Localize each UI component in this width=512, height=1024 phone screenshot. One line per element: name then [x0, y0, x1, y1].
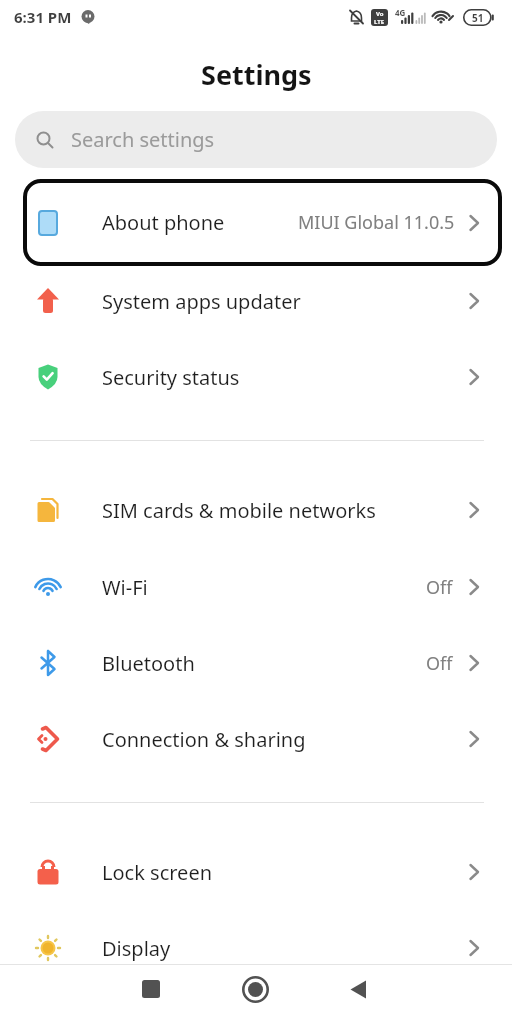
- button[interactable]: Display: [0, 910, 512, 986]
- button[interactable]: [342, 973, 374, 1005]
- staticText: Display: [102, 935, 171, 962]
- staticText: Wi-Fi: [102, 574, 148, 601]
- button[interactable]: SIM cards & mobile networks: [0, 472, 512, 548]
- staticText: About phone: [102, 209, 225, 236]
- staticText: Bluetooth: [102, 650, 195, 677]
- staticText: System apps updater: [102, 288, 301, 315]
- button[interactable]: Security status: [0, 339, 512, 415]
- staticText: 6:31 PM: [14, 7, 72, 27]
- staticText: 51: [472, 11, 484, 25]
- button[interactable]: Bluetooth: [0, 625, 512, 701]
- staticText: Connection & sharing: [102, 726, 306, 753]
- button[interactable]: Search settings: [15, 111, 497, 168]
- button[interactable]: About phone: [23, 179, 502, 266]
- button[interactable]: System apps updater: [0, 263, 512, 339]
- staticText: 4G: [395, 7, 406, 18]
- staticText: Search settings: [71, 126, 215, 153]
- staticText: LTE: [374, 18, 385, 26]
- button[interactable]: [239, 973, 271, 1005]
- button[interactable]: Lock screen: [0, 834, 512, 910]
- staticText: Settings: [201, 56, 312, 93]
- button[interactable]: Connection & sharing: [0, 701, 512, 777]
- button[interactable]: [135, 973, 167, 1005]
- staticText: MIUI Global 11.0.5: [298, 210, 455, 235]
- staticText: Lock screen: [102, 859, 213, 886]
- staticText: Security status: [102, 364, 240, 391]
- staticText: Vo: [376, 10, 384, 18]
- staticText: SIM cards & mobile networks: [102, 497, 376, 524]
- staticText: Off: [426, 575, 453, 600]
- button[interactable]: Wi-Fi: [0, 549, 512, 625]
- staticText: Off: [426, 651, 453, 676]
